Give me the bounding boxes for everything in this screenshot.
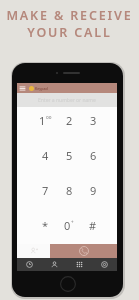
staticText: 7 — [42, 183, 49, 197]
button[interactable]: Enter a number or name — [17, 93, 117, 107]
staticText: Enter a number or name — [38, 97, 96, 104]
staticText: Keypad — [35, 86, 48, 91]
button[interactable]: 3 — [81, 113, 105, 127]
staticText: MAKE & RECEIVE — [6, 7, 133, 24]
button[interactable]: Settings — [92, 258, 117, 271]
staticText: 4 — [42, 148, 49, 162]
staticText: 5 — [66, 148, 73, 162]
button[interactable]: 4 — [33, 148, 57, 162]
staticText: 6 — [90, 148, 97, 162]
button[interactable]: Call — [50, 244, 117, 258]
button[interactable]: 7 — [33, 183, 57, 197]
button[interactable]: 9 — [81, 183, 105, 197]
button[interactable]: 0 — [57, 218, 81, 232]
staticText: * — [42, 218, 49, 232]
staticText: 2 — [66, 113, 73, 127]
staticText: 3 — [90, 113, 97, 127]
button[interactable]: Menu — [19, 85, 26, 92]
button[interactable]: Contacts — [42, 258, 67, 271]
staticText: 1 — [39, 113, 46, 127]
button[interactable]: 1 — [33, 113, 57, 127]
staticText: 0 — [64, 218, 71, 232]
button[interactable]: 8 — [57, 183, 81, 197]
button[interactable]: Recents — [17, 258, 42, 271]
staticText: + — [71, 219, 74, 225]
staticText: 9 — [90, 183, 97, 197]
staticText: oo — [46, 114, 52, 120]
button[interactable]: # — [81, 218, 105, 232]
button[interactable]: Keypad — [67, 258, 92, 271]
staticText: 8 — [66, 183, 73, 197]
button[interactable]: Add contact — [17, 244, 50, 258]
button[interactable]: 6 — [81, 148, 105, 162]
button[interactable]: * — [33, 218, 57, 232]
staticText: YOUR CALL — [27, 24, 112, 41]
button[interactable]: 5 — [57, 148, 81, 162]
staticText: # — [89, 218, 97, 232]
button[interactable]: 2 — [57, 113, 81, 127]
